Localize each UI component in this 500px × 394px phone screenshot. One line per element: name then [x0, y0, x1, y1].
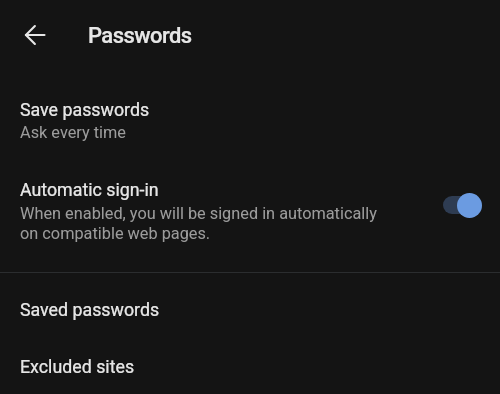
button[interactable]: Saved passwords	[0, 284, 500, 334]
button[interactable]: Excluded sites	[0, 341, 500, 391]
button[interactable]: Save passwords	[0, 89, 500, 147]
staticText: When enabled, you will be signed in auto…	[20, 204, 385, 243]
button[interactable]: Automatic sign-in	[0, 169, 500, 253]
staticText: Save passwords	[20, 99, 150, 120]
staticText: Ask every time	[20, 123, 126, 142]
staticText: Automatic sign-in	[20, 179, 159, 200]
staticText: Excluded sites	[20, 356, 135, 377]
button[interactable]: Back	[11, 11, 59, 59]
staticText: Saved passwords	[20, 299, 160, 320]
button[interactable]: Automatic sign-in, on	[440, 189, 486, 221]
staticText: Passwords	[88, 23, 192, 49]
